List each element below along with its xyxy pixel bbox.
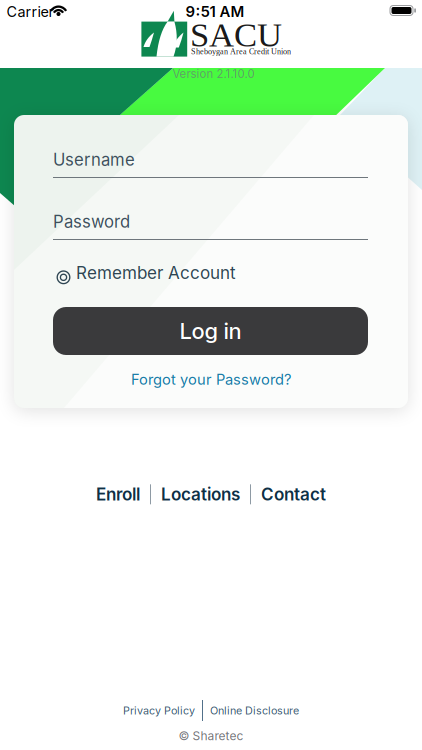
staticText: Username (53, 149, 135, 170)
textField[interactable]: Password (53, 211, 368, 232)
button[interactable]: Online Disclosure (210, 704, 299, 717)
staticText: Sheboygan Area Credit Union (191, 47, 291, 56)
staticText: Remember Account (76, 262, 236, 283)
staticText: © Sharetec (178, 728, 243, 743)
button[interactable]: Locations (161, 484, 240, 505)
staticText: Version 2.1.10.0 (172, 67, 254, 81)
staticText: Contact (261, 484, 326, 505)
staticText: 9:51 AM (185, 2, 244, 21)
button[interactable]: Privacy Policy (123, 704, 195, 717)
staticText: Locations (161, 484, 240, 505)
staticText: Online Disclosure (210, 704, 299, 717)
button[interactable]: Forgot your Password? (131, 370, 291, 388)
staticText: Enroll (96, 484, 140, 505)
button[interactable]: Enroll (96, 484, 140, 505)
staticText: Carrier (6, 3, 53, 20)
textField[interactable]: Username (53, 149, 368, 170)
button[interactable]: Contact (261, 484, 326, 505)
staticText: Privacy Policy (123, 704, 195, 717)
staticText: SACU (190, 15, 282, 54)
button[interactable]: Log in (53, 307, 368, 355)
staticText: Forgot your Password? (131, 370, 291, 388)
staticText: Username (53, 149, 135, 170)
button[interactable]: Remember Account (56, 262, 236, 283)
staticText: Log in (179, 318, 241, 344)
staticText: Password (53, 211, 130, 232)
staticText: Password (53, 211, 130, 232)
